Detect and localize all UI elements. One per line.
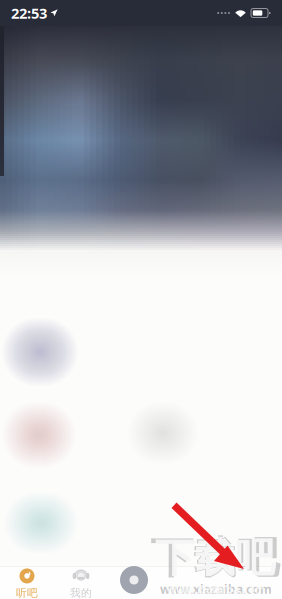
staticText: 听吧 [16, 586, 38, 599]
staticText: www.xiazaiba.com [160, 581, 272, 597]
staticText: www.xiazaiba.com [167, 582, 265, 596]
button[interactable]: 我的 [54, 566, 108, 599]
staticText: 我的 [70, 586, 92, 599]
button[interactable]: 听吧 [0, 566, 54, 599]
staticText: 下载吧 [155, 533, 275, 582]
staticText: 22:53 [11, 3, 47, 23]
button[interactable]: Now playing [120, 566, 148, 594]
staticText: 下载吧 [150, 532, 279, 584]
